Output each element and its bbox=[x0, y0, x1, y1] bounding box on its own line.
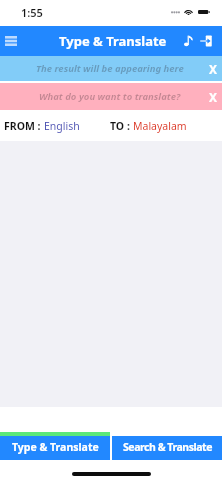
staticText: X bbox=[209, 89, 218, 105]
staticText: The result will be appearing here bbox=[36, 62, 184, 75]
staticText: Type & Translate bbox=[12, 440, 99, 454]
button[interactable]: Sound bbox=[173, 26, 195, 56]
button[interactable]: Search & Translate bbox=[112, 432, 222, 460]
button[interactable]: Clear result bbox=[204, 56, 222, 81]
staticText: Search & Translate bbox=[123, 440, 212, 454]
staticText: English bbox=[44, 119, 80, 133]
button[interactable]: Clear input bbox=[204, 83, 222, 110]
staticText: X bbox=[209, 61, 218, 77]
staticText: FROM : bbox=[4, 119, 44, 133]
staticText: TO : bbox=[110, 119, 133, 133]
button[interactable]: TO : bbox=[110, 119, 187, 133]
staticText: 1:55 bbox=[21, 5, 43, 20]
button[interactable]: Login bbox=[195, 26, 217, 56]
button[interactable]: Menu bbox=[0, 26, 22, 56]
button[interactable]: Type & Translate bbox=[0, 432, 110, 460]
button[interactable]: FROM : bbox=[4, 119, 80, 133]
staticText: What do you want to translate? bbox=[39, 90, 181, 103]
staticText: Type & Translate bbox=[59, 32, 167, 50]
staticText: Malayalam bbox=[133, 119, 187, 133]
